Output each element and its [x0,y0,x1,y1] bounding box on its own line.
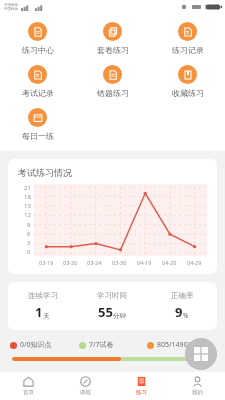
button[interactable]: 正确率 [147,291,217,321]
staticText: 9 [175,303,183,321]
staticText: 04-19 [137,259,152,266]
staticText: 03-19 [39,259,54,266]
button[interactable]: Grid menu [185,338,217,370]
button[interactable]: 错题练习 [75,63,150,100]
staticText: 04-20 [162,259,177,266]
button[interactable]: 学习时间 [77,291,147,321]
button[interactable]: 套卷练习 [75,20,150,57]
staticText: 考试练习情况 [18,167,72,178]
staticText: 正确率 [171,291,194,300]
staticText: 套卷练习 [97,45,129,55]
staticText: 11:01 [204,3,220,11]
staticText: 0 [27,248,31,256]
staticText: 12 [24,211,31,219]
button[interactable]: 练习中心 [0,20,75,57]
staticText: 805/1490题 [157,340,195,350]
staticText: 练习中心 [22,45,54,55]
button[interactable]: 每日一练 [0,106,75,143]
staticText: 首页 [23,389,34,396]
button[interactable]: 练习记录 [150,20,225,57]
staticText: 0/0知识点 [20,340,52,350]
staticText: 课程 [80,389,91,396]
button[interactable]: 收藏练习 [150,63,225,100]
button[interactable]: 考试记录 [0,63,75,100]
staticText: 每日一练 [22,131,54,141]
staticText: 7/7试卷 [89,340,114,350]
staticText: 分钟 [113,312,126,320]
button[interactable]: 首页 [0,372,57,400]
button[interactable]: 连续学习 [8,291,77,321]
staticText: 18 [24,193,31,201]
staticText: 1 [35,303,43,321]
button[interactable]: 练习 [113,372,169,400]
staticText: 中国移动 中国移动 [4,3,18,11]
staticText: 连续学习 [28,291,58,300]
staticText: 错题练习 [97,88,129,98]
staticText: 15 [24,202,31,210]
staticText: % [183,311,189,320]
staticText: 21 [24,184,31,192]
staticText: 9 [27,221,31,229]
staticText: 03-20 [63,259,78,266]
button[interactable]: 我的 [169,372,225,400]
staticText: 学习时间 [97,291,127,300]
staticText: 天 [43,312,50,320]
staticText: 考试记录 [22,88,54,98]
staticText: 03-24 [87,259,102,266]
staticText: 练习 [136,389,147,396]
staticText: 04-29 [187,259,202,266]
staticText: 练习记录 [172,45,204,55]
button[interactable]: 课程 [57,372,113,400]
staticText: 6 [27,230,31,238]
staticText: 3 [27,239,31,247]
staticText: 55 [98,303,113,321]
staticText: 我的 [192,389,203,396]
staticText: 收藏练习 [172,88,204,98]
staticText: 03-30 [112,259,127,266]
